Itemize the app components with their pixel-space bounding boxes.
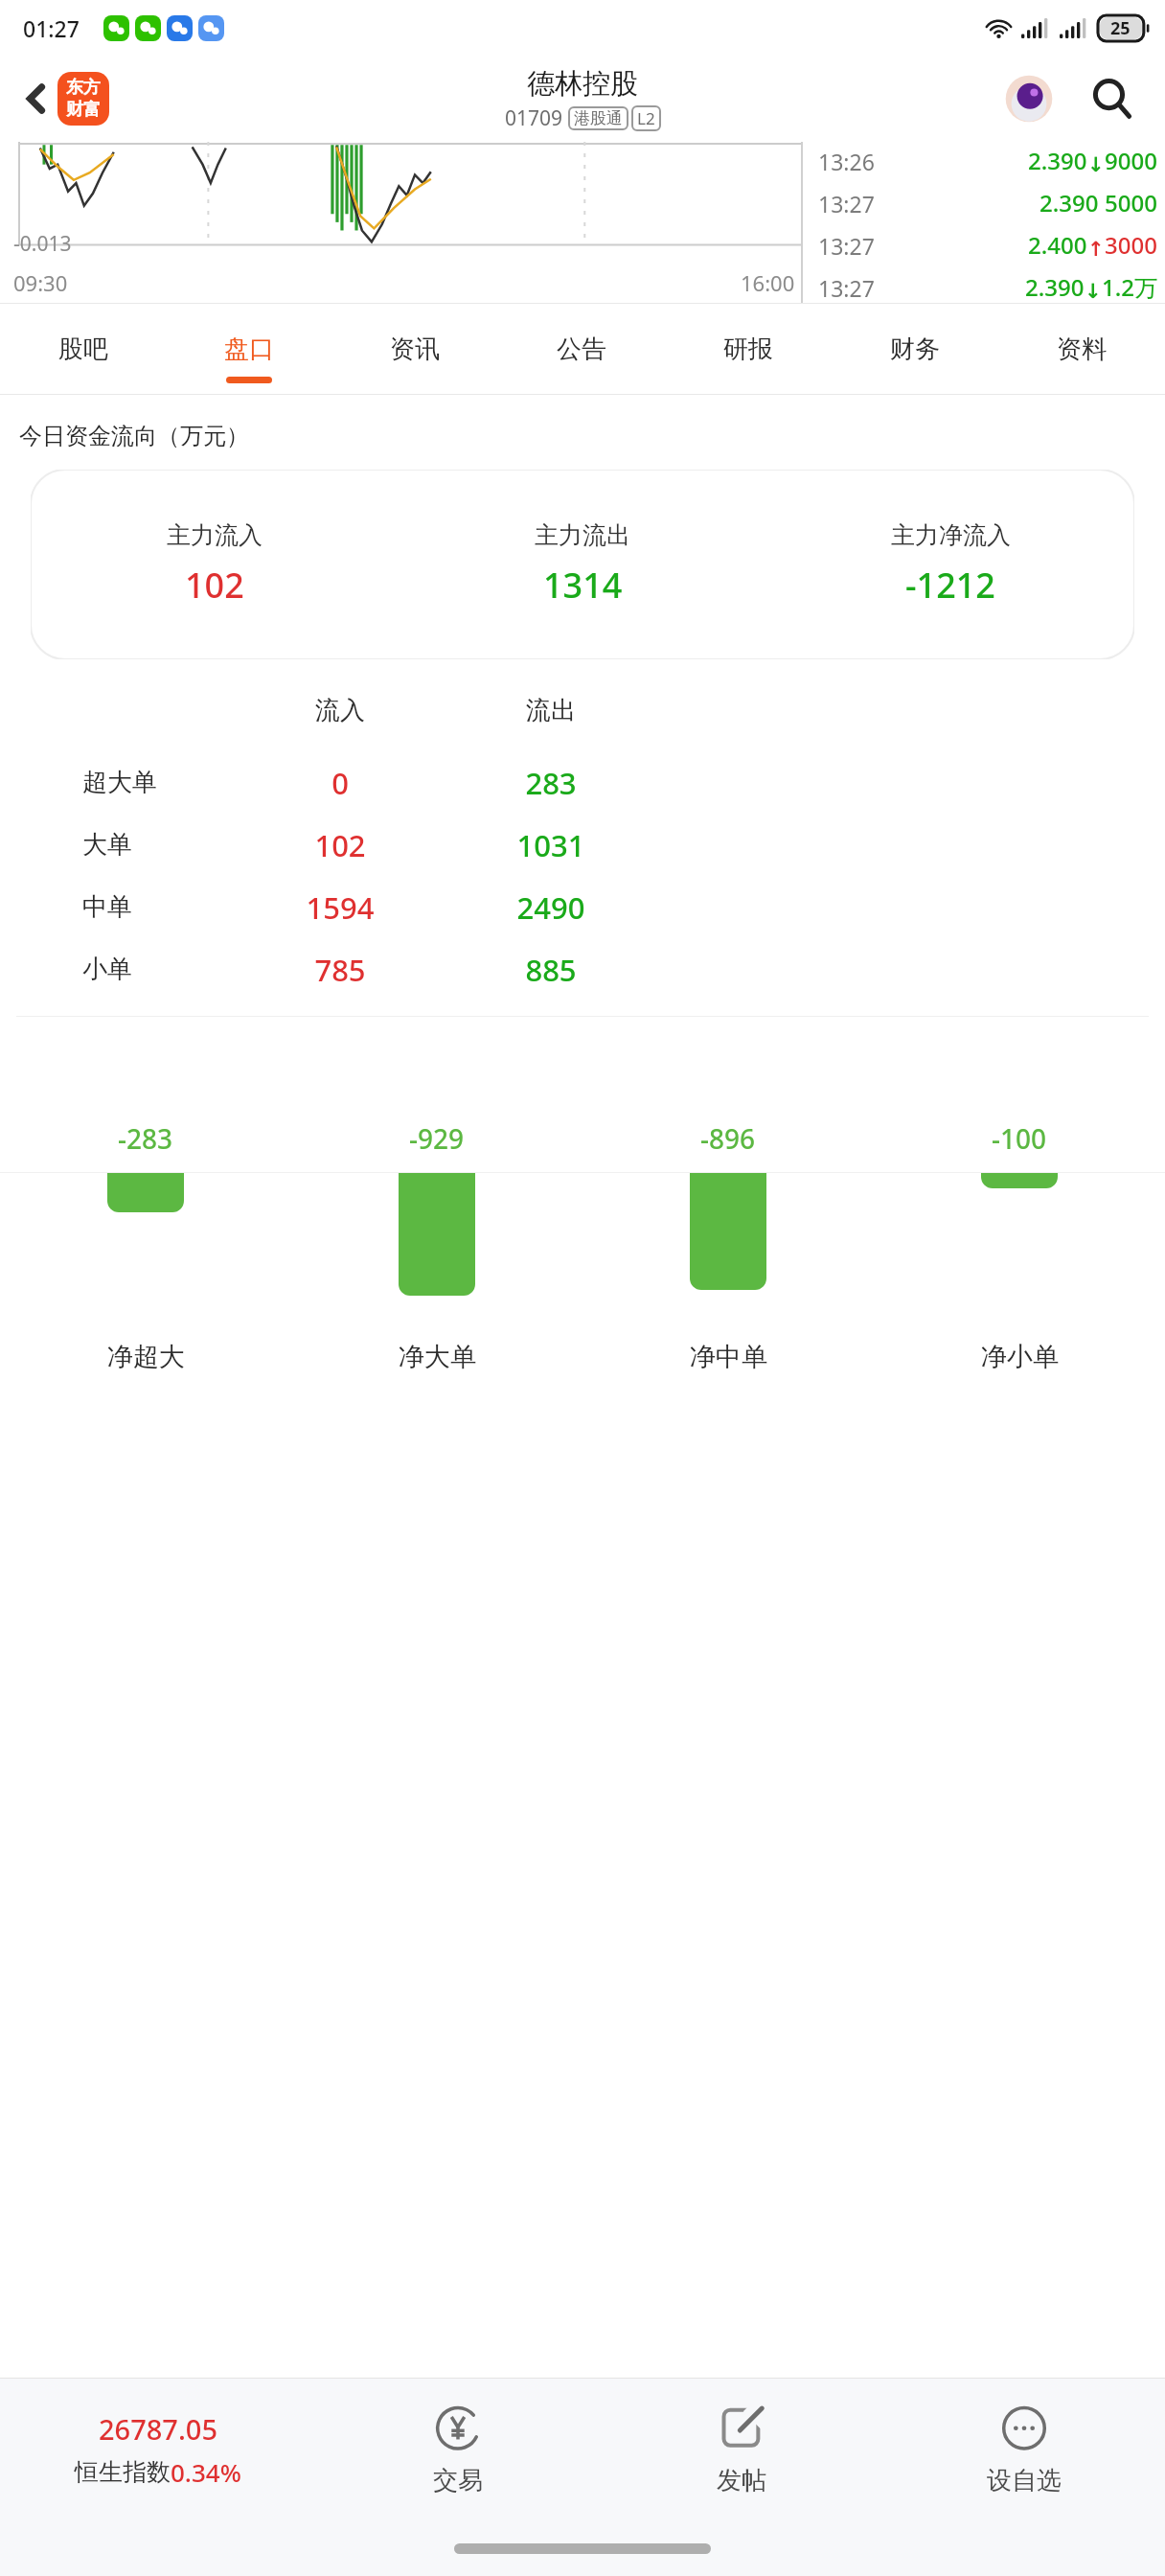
staticText: 9000 [1105,145,1157,176]
staticText: 发帖 [717,2465,766,2496]
staticText: 股吧 [58,333,108,365]
button[interactable]: 东方财富 [57,72,109,126]
button[interactable]: 返回 [10,72,63,126]
staticText: 2.390 [1039,187,1099,218]
staticText: ↑ [1087,238,1105,261]
staticText: 公告 [557,333,606,365]
staticText: 小单 [82,954,235,985]
staticText: 25 [1110,16,1131,40]
staticText: 13:27 [818,189,875,218]
staticText: 财富 [66,99,101,121]
staticText: 0 [235,763,445,803]
staticText: 102 [235,825,445,865]
staticText: 2.400 [1028,229,1087,261]
staticText: 净大单 [399,1341,476,1373]
staticText: ↓ [1087,153,1105,176]
button[interactable]: 主力流入 [31,470,1134,659]
button[interactable]: 财务 [832,303,998,395]
staticText: 16:00 [741,268,795,297]
staticText: L2 [637,107,655,129]
button[interactable]: 资料 [998,303,1165,395]
staticText: -896 [700,1120,756,1157]
staticText: -0.013 [13,230,72,258]
staticText: 102 [185,562,244,609]
staticText: 今日资金流向（万元） [19,422,249,450]
staticText: 流入 [235,695,445,726]
button[interactable]: 交易 [316,2379,600,2520]
staticText: 283 [445,763,656,803]
staticText: 885 [445,950,656,990]
button[interactable]: 发帖 [600,2379,882,2520]
staticText: 1.2万 [1102,271,1157,303]
staticText: 财务 [890,333,940,365]
staticText: -929 [409,1120,465,1157]
staticText: 2.390 [1028,145,1087,176]
staticText: 净小单 [981,1341,1059,1373]
staticText: 主力流出 [535,520,630,550]
staticText: 设自选 [987,2465,1062,2496]
staticText: 2.390 [1025,271,1085,303]
staticText: 研报 [723,333,773,365]
staticText: -283 [118,1120,173,1157]
staticText: -100 [992,1120,1047,1157]
button[interactable]: 26787.05 [0,2379,316,2520]
staticText: 恒生指数 [75,2457,171,2487]
staticText: 净中单 [690,1341,767,1373]
button[interactable]: 研报 [665,303,832,395]
staticText: 盘口 [224,333,274,365]
staticText: 德林控股 [527,66,638,102]
staticText: 5000 [1105,187,1157,218]
staticText: 主力流入 [167,520,263,550]
staticText: 流出 [445,695,656,726]
staticText: 1031 [445,825,656,865]
staticText: 13:27 [818,231,875,261]
button[interactable]: 资讯 [331,303,498,395]
staticText: 港股通 [574,108,623,128]
staticText: 资料 [1057,333,1107,365]
staticText: 资讯 [390,333,440,365]
button[interactable]: AI助手 [1000,70,1058,127]
staticText: 0.34% [171,2455,241,2489]
staticText: 超大单 [82,767,235,798]
button[interactable]: 股吧 [0,303,166,395]
staticText: 13:27 [818,273,875,303]
staticText: 13:26 [818,147,875,176]
button[interactable]: 设自选 [882,2379,1165,2520]
staticText: 大单 [82,829,235,861]
button[interactable]: 搜索 [1081,67,1144,130]
staticText: 01:27 [23,13,80,43]
staticText: 785 [235,950,445,990]
staticText: 2490 [445,887,656,928]
staticText: -1212 [905,562,995,609]
staticText: 主力净流入 [891,520,1011,550]
staticText: 01709 [505,104,563,132]
button[interactable]: 公告 [498,303,665,395]
staticText: 1594 [235,887,445,928]
staticText: 09:30 [13,268,68,297]
staticText: 净超大 [107,1341,185,1373]
staticText: 交易 [433,2465,483,2496]
staticText: 26787.05 [99,2410,218,2448]
staticText: 1314 [543,562,623,609]
staticText: 东方 [66,77,101,99]
staticText: 中单 [82,891,235,923]
staticText: 3000 [1105,229,1157,261]
staticText: ↓ [1085,280,1102,303]
button[interactable]: 盘口 [166,303,331,395]
